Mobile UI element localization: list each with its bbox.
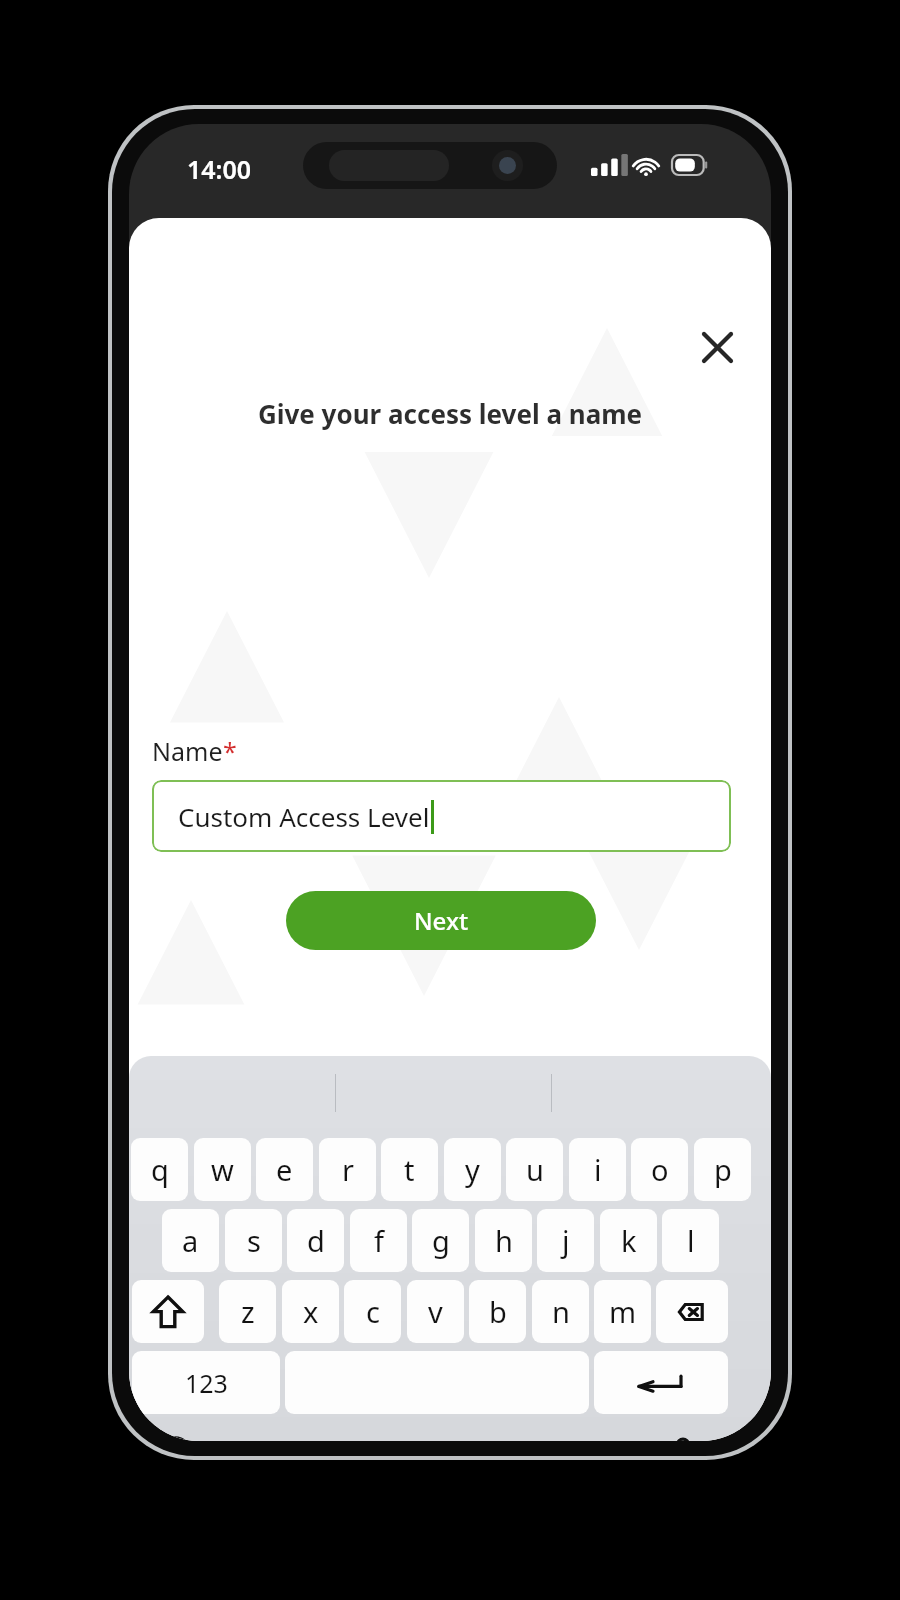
staticText: 123: [185, 1366, 228, 1400]
staticText: Name: [152, 734, 223, 768]
button[interactable]: 123: [132, 1351, 280, 1414]
button[interactable]: Emoji: [149, 1428, 201, 1441]
staticText: w: [211, 1150, 234, 1189]
button[interactable]: e: [256, 1138, 313, 1201]
staticText: Custom Access Level: [178, 799, 430, 834]
staticText: v: [428, 1292, 443, 1331]
button[interactable]: y: [444, 1138, 501, 1201]
button[interactable]: x: [282, 1280, 339, 1343]
button[interactable]: Custom Access Level: [152, 780, 731, 852]
button[interactable]: t: [381, 1138, 438, 1201]
staticText: a: [182, 1221, 199, 1260]
button[interactable]: o: [631, 1138, 688, 1201]
button[interactable]: Return: [594, 1351, 728, 1414]
button[interactable]: l: [662, 1209, 719, 1272]
button[interactable]: s: [225, 1209, 282, 1272]
staticText: j: [562, 1221, 570, 1260]
button[interactable]: Next: [286, 891, 596, 950]
button[interactable]: n: [532, 1280, 589, 1343]
staticText: l: [687, 1221, 695, 1260]
button[interactable]: g: [412, 1209, 469, 1272]
staticText: s: [247, 1221, 261, 1260]
staticText: e: [276, 1150, 293, 1189]
staticText: Give your access level a name: [129, 396, 771, 431]
staticText: c: [366, 1292, 380, 1331]
button[interactable]: p: [694, 1138, 751, 1201]
button[interactable]: k: [600, 1209, 657, 1272]
staticText: p: [714, 1150, 732, 1189]
button[interactable]: b: [469, 1280, 526, 1343]
staticText: y: [465, 1150, 480, 1189]
button[interactable]: j: [537, 1209, 594, 1272]
staticText: g: [432, 1221, 450, 1260]
button[interactable]: w: [194, 1138, 251, 1201]
staticText: r: [342, 1150, 354, 1189]
staticText: m: [609, 1292, 637, 1331]
button[interactable]: d: [287, 1209, 344, 1272]
staticText: 14:00: [187, 152, 252, 186]
staticText: x: [303, 1292, 319, 1331]
button[interactable]: Shift: [132, 1280, 204, 1343]
button[interactable]: Close: [689, 319, 745, 375]
staticText: f: [374, 1221, 384, 1260]
button[interactable]: z: [219, 1280, 276, 1343]
staticText: u: [526, 1150, 544, 1189]
staticText: n: [552, 1292, 570, 1331]
button[interactable]: i: [569, 1138, 626, 1201]
button[interactable]: a: [162, 1209, 219, 1272]
staticText: o: [651, 1150, 669, 1189]
staticText: z: [241, 1292, 255, 1331]
staticText: i: [594, 1150, 602, 1189]
staticText: *: [223, 734, 237, 768]
button[interactable]: m: [594, 1280, 651, 1343]
staticText: q: [151, 1150, 169, 1189]
button[interactable]: f: [350, 1209, 407, 1272]
staticText: Next: [414, 904, 469, 937]
staticText: b: [489, 1292, 507, 1331]
staticText: k: [621, 1221, 637, 1260]
button[interactable]: q: [131, 1138, 188, 1201]
staticText: d: [307, 1221, 325, 1260]
button[interactable]: Backspace: [656, 1280, 728, 1343]
staticText: t: [404, 1150, 415, 1189]
button[interactable]: u: [506, 1138, 563, 1201]
button[interactable]: Voice input: [657, 1428, 709, 1441]
button[interactable]: v: [407, 1280, 464, 1343]
staticText: h: [495, 1221, 513, 1260]
button[interactable]: h: [475, 1209, 532, 1272]
button[interactable]: c: [344, 1280, 401, 1343]
button[interactable]: r: [319, 1138, 376, 1201]
